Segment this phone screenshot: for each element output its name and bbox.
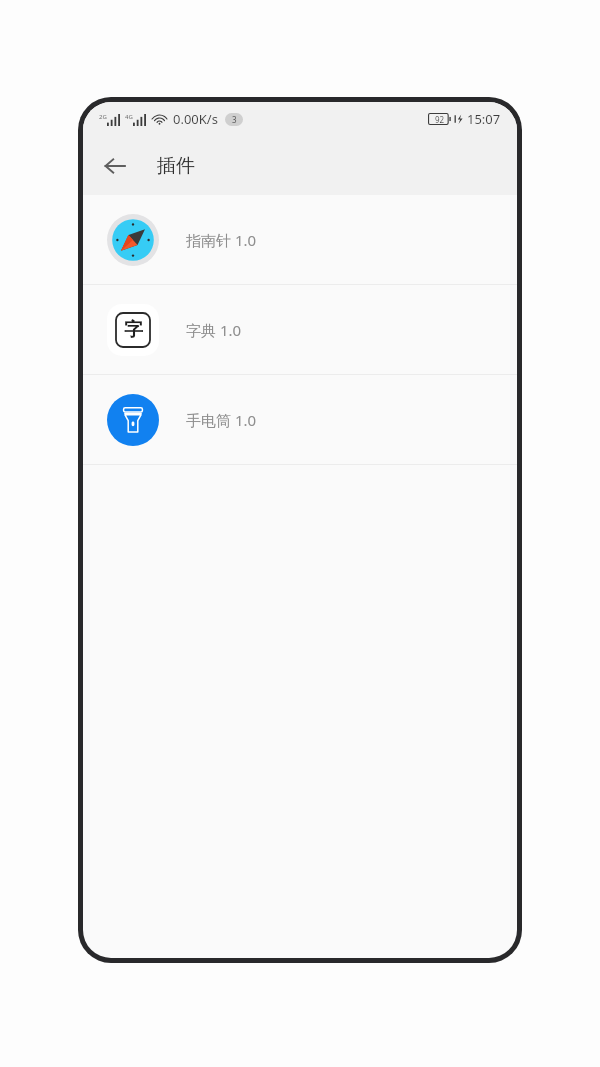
staticText: 插件 [157, 154, 195, 178]
staticText: 3 [232, 114, 237, 125]
button[interactable]: 字 [83, 285, 517, 374]
staticText: 手电筒 1.0 [186, 410, 257, 430]
button[interactable]: 手电筒 1.0 [83, 375, 517, 464]
staticText: 字 [124, 318, 143, 342]
button[interactable]: Back [91, 142, 139, 190]
staticText: 0.00K/s [173, 110, 218, 128]
staticText: 4G [125, 113, 133, 121]
staticText: 字典 1.0 [186, 320, 242, 340]
staticText: 15:07 [467, 110, 501, 128]
staticText: 2G [99, 113, 107, 121]
staticText: 92 [435, 114, 445, 125]
staticText: 指南针 1.0 [186, 230, 257, 250]
button[interactable]: 指南针 1.0 [83, 195, 517, 284]
